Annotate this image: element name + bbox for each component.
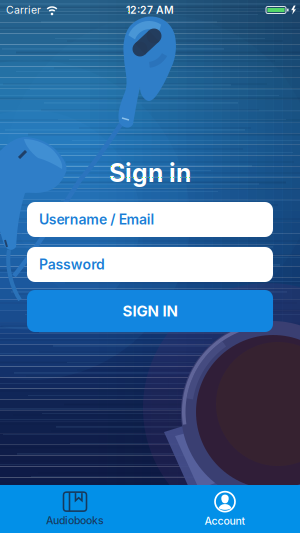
button[interactable]: Audiobooks [0,485,150,533]
staticText: Account [204,515,245,527]
secureTextField[interactable]: Password [27,247,273,282]
button[interactable]: Account [150,485,300,533]
staticText: Carrier [6,4,41,16]
staticText: 12:27 AM [126,4,174,16]
staticText: Username / Email [39,211,154,228]
staticText: Password [39,256,105,273]
staticText: SIGN IN [122,302,177,320]
staticText: Audiobooks [46,514,104,527]
textField[interactable]: Username / Email [27,202,273,237]
staticText: Sign in [109,158,191,188]
button[interactable]: SIGN IN [27,290,273,332]
